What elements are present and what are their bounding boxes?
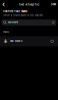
staticText: Real Madrid — [8, 21, 18, 24]
button[interactable]: Done — [49, 1, 58, 8]
staticText: Done — [51, 3, 56, 6]
button[interactable]: Real Madrid — [2, 19, 56, 26]
button[interactable]: Real Madrid — [0, 36, 58, 46]
button[interactable]: Back — [0, 0, 8, 9]
staticText: THE ATHLETIC — [18, 3, 39, 6]
staticText: Real Madrid — [10, 40, 22, 43]
staticText: Teams — [3, 31, 9, 33]
staticText: Content is curated based on your selecti… — [3, 14, 43, 17]
staticText: Confirm Your Teams — [3, 10, 27, 13]
